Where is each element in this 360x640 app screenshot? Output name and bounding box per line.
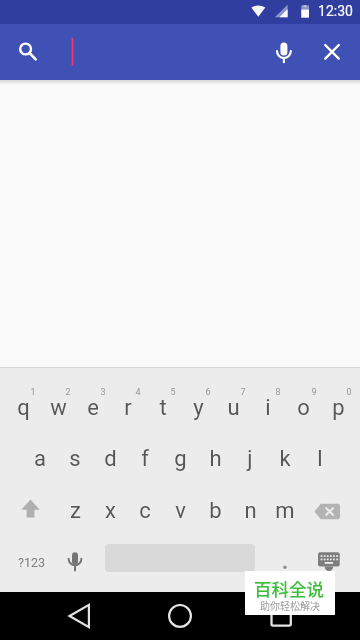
- staticText: t: [159, 395, 167, 421]
- staticText: a: [34, 446, 46, 472]
- staticText: x: [105, 498, 116, 524]
- staticText: 百科全说: [254, 576, 324, 601]
- staticText: ?123: [18, 555, 45, 570]
- staticText: 助你轻松解决: [260, 598, 320, 612]
- staticText: l: [317, 446, 323, 472]
- staticText: g: [174, 446, 187, 472]
- staticText: p: [332, 395, 345, 421]
- staticText: u: [227, 395, 240, 421]
- staticText: 6: [205, 387, 211, 398]
- staticText: b: [209, 498, 222, 524]
- staticText: q: [17, 395, 30, 421]
- staticText: y: [193, 395, 204, 421]
- staticText: o: [297, 395, 310, 421]
- staticText: m: [275, 498, 295, 524]
- staticText: 1: [30, 387, 36, 398]
- staticText: 4: [135, 387, 141, 398]
- staticText: h: [209, 446, 222, 472]
- staticText: 0: [346, 387, 352, 398]
- staticText: w: [50, 395, 67, 421]
- staticText: e: [87, 395, 99, 421]
- staticText: n: [244, 498, 257, 524]
- staticText: 8: [275, 387, 281, 398]
- staticText: f: [141, 446, 149, 472]
- staticText: d: [104, 446, 117, 472]
- staticText: 7: [240, 387, 246, 398]
- staticText: k: [279, 446, 291, 472]
- staticText: 5: [170, 387, 176, 398]
- staticText: 3: [100, 387, 106, 398]
- staticText: i: [265, 395, 271, 421]
- staticText: r: [124, 395, 132, 421]
- staticText: z: [70, 498, 81, 524]
- staticText: j: [247, 446, 253, 472]
- staticText: s: [69, 446, 81, 472]
- staticText: 12:30: [318, 3, 353, 19]
- staticText: v: [175, 498, 186, 524]
- staticText: 2: [65, 387, 71, 398]
- staticText: 9: [311, 387, 317, 398]
- staticText: c: [139, 498, 151, 524]
